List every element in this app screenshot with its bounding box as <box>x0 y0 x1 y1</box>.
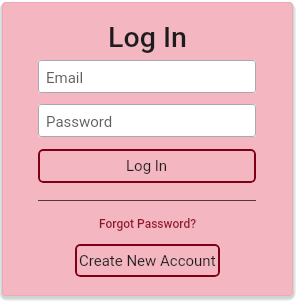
button[interactable]: Forgot Password? <box>2 215 293 233</box>
button[interactable]: Email <box>38 60 256 93</box>
button[interactable]: Password <box>38 104 256 137</box>
staticText: Password <box>46 113 113 131</box>
staticText: Forgot Password? <box>99 217 197 231</box>
staticText: Log In <box>2 21 293 54</box>
staticText: Create New Account <box>79 252 216 270</box>
button[interactable]: Log In <box>38 149 256 183</box>
staticText: Email <box>46 69 84 87</box>
button[interactable]: Create New Account <box>75 244 220 277</box>
staticText: Log In <box>126 157 168 175</box>
